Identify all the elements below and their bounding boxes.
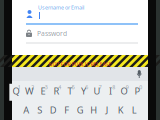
button[interactable]: Username or Email — [12, 0, 148, 25]
staticText: T — [68, 85, 73, 97]
staticText: 3 — [45, 84, 48, 91]
staticText: A — [23, 104, 29, 116]
button[interactable]: 4 — [50, 84, 63, 101]
button[interactable]: H — [87, 103, 101, 120]
button[interactable]: L — [128, 103, 141, 120]
staticText: Y — [81, 85, 86, 97]
staticText: J — [106, 104, 109, 116]
button[interactable]: G — [74, 103, 87, 120]
staticText: F — [64, 104, 69, 116]
button[interactable]: 7 — [90, 84, 104, 101]
button[interactable]: 9 — [117, 84, 131, 101]
staticText: Password — [37, 29, 67, 38]
staticText: 7 — [99, 84, 102, 91]
button[interactable]: K — [114, 103, 128, 120]
button[interactable]: F — [60, 103, 74, 120]
staticText: 4 — [58, 84, 61, 91]
button[interactable]: D — [47, 103, 60, 120]
button[interactable]: J — [101, 103, 114, 120]
button[interactable]: 2 — [23, 84, 36, 101]
button[interactable]: S — [33, 103, 47, 120]
staticText: K — [118, 104, 124, 116]
button[interactable]: A — [20, 103, 33, 120]
button[interactable]: 8 — [104, 84, 117, 101]
staticText: D — [50, 104, 57, 116]
button[interactable]: Voice input — [128, 67, 148, 81]
staticText: E — [41, 85, 46, 97]
staticText: G — [77, 104, 84, 116]
staticText: S — [37, 104, 42, 116]
staticText: L — [132, 104, 137, 116]
staticText: I — [109, 85, 112, 97]
button[interactable]: 5 — [63, 84, 77, 101]
staticText: Username or Email — [38, 4, 84, 11]
staticText: H — [90, 104, 97, 116]
staticText: O — [121, 85, 128, 97]
staticText: NOT FOR PUBLIC RELEASE — [48, 61, 111, 68]
staticText: U — [94, 85, 101, 97]
staticText: 8 — [112, 84, 115, 91]
staticText: 2 — [31, 84, 34, 91]
staticText: 9 — [126, 84, 129, 91]
button[interactable]: 3 — [36, 84, 50, 101]
button[interactable]: 0 — [131, 84, 144, 101]
staticText: Q — [13, 85, 20, 97]
staticText: W — [25, 85, 34, 97]
staticText: 6 — [85, 84, 88, 91]
staticText: P — [135, 85, 141, 97]
staticText: 0 — [139, 84, 142, 91]
button[interactable]: Password — [12, 25, 148, 44]
button[interactable]: 6 — [77, 84, 90, 101]
staticText: 5 — [72, 84, 75, 91]
button[interactable]: 1 — [9, 84, 23, 101]
staticText: R — [54, 85, 60, 97]
staticText: 1 — [18, 84, 21, 91]
